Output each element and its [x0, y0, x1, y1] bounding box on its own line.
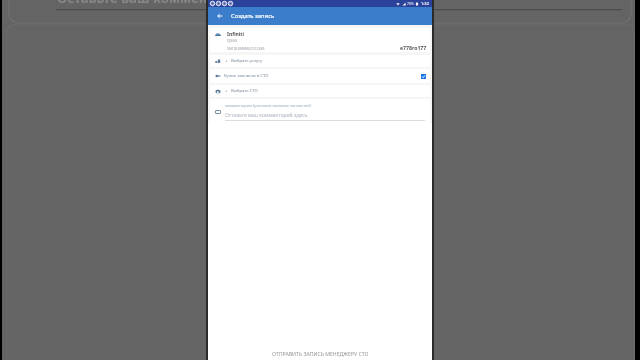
- staticText: QX60: [227, 38, 237, 43]
- staticText: Оставьте ваш комментарий здесь: [225, 112, 308, 119]
- button[interactable]: +: [210, 85, 430, 97]
- staticText: Выбрать СТО: [231, 88, 258, 94]
- button[interactable]: Купил запчасти в СТО: [210, 69, 430, 83]
- staticText: ОТПРАВИТЬ ЗАПИСЬ МЕНЕДЖЕРУ СТО: [272, 350, 369, 357]
- staticText: +: [225, 88, 228, 94]
- button[interactable]: Infiniti: [210, 28, 430, 52]
- staticText: Купил запчасти в СТО: [224, 73, 421, 79]
- staticText: е778ro177: [400, 44, 427, 51]
- staticText: Выбрать услугу: [231, 58, 263, 64]
- staticText: Создать запись: [231, 12, 275, 20]
- staticText: 1:32: [421, 1, 429, 6]
- staticText: 5N1DL0MM8LC512345: [227, 46, 265, 51]
- button[interactable]: Back: [214, 10, 226, 22]
- button[interactable]: +: [210, 55, 430, 67]
- staticText: комментарии (уточните наличие запчастей): [225, 103, 311, 108]
- staticText: Infiniti: [227, 31, 245, 38]
- staticText: +: [225, 58, 228, 64]
- staticText: 70%: [407, 1, 414, 6]
- button[interactable]: комментарии (уточните наличие запчастей): [210, 99, 430, 123]
- staticText: Оставьте ваш комментарий: [57, 0, 249, 7]
